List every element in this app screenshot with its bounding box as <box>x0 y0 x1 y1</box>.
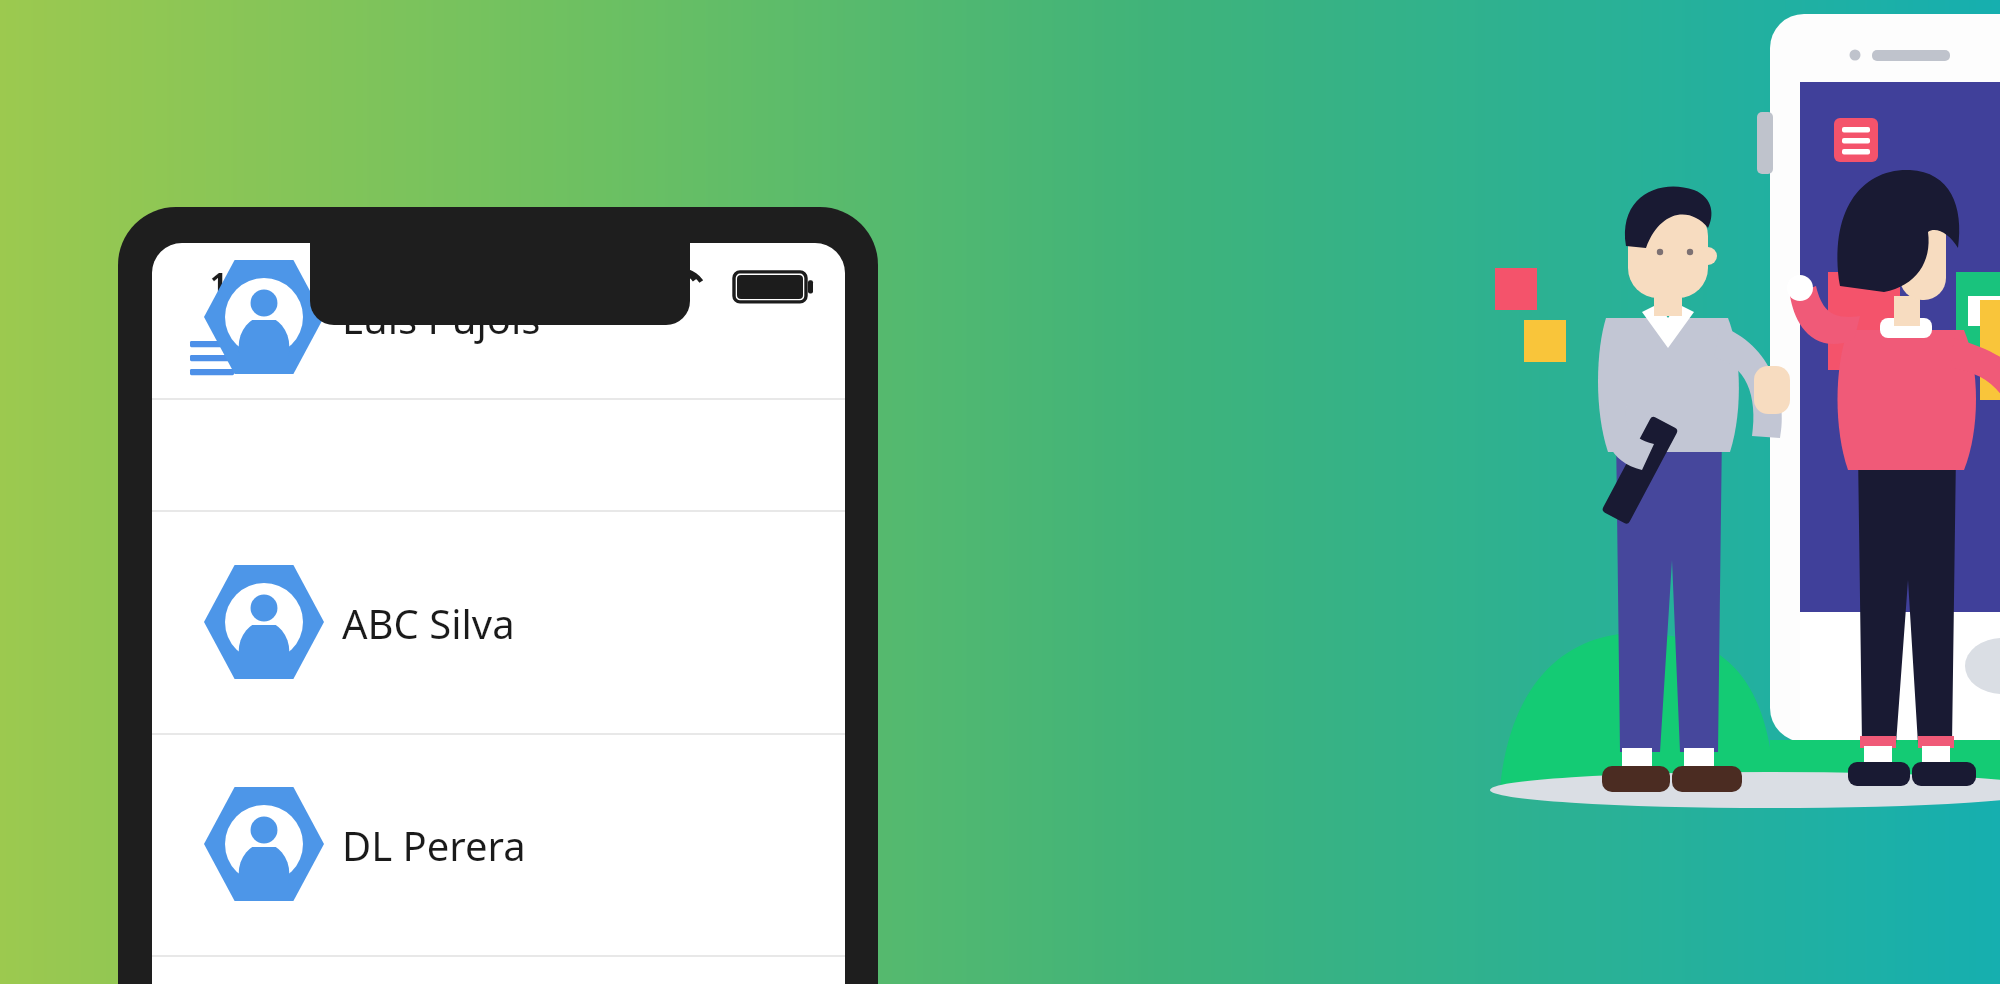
staticText: ABC Silva <box>342 596 515 650</box>
button[interactable]: Luis Pujols <box>152 286 845 508</box>
button[interactable]: Open navigation menu <box>178 325 256 389</box>
button[interactable]: ABC Silva <box>152 510 845 732</box>
button[interactable]: DL Perera <box>152 733 845 955</box>
staticText: 1:05 <box>210 263 270 304</box>
staticText: Luis Pujols <box>342 291 541 345</box>
staticText: DL Perera <box>342 818 526 872</box>
